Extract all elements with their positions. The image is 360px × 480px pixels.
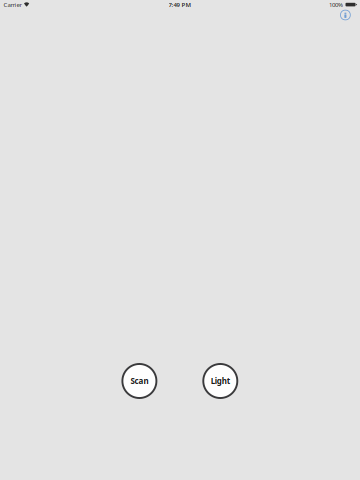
staticText: Carrier	[3, 0, 21, 9]
staticText: Scan	[130, 376, 148, 386]
button[interactable]: Scan	[121, 363, 157, 399]
button[interactable]: Light	[202, 363, 238, 399]
staticText: Light	[211, 376, 230, 386]
button[interactable]: Info	[336, 6, 354, 24]
staticText: 100%	[329, 0, 343, 9]
staticText: 7:49 PM	[168, 0, 191, 9]
